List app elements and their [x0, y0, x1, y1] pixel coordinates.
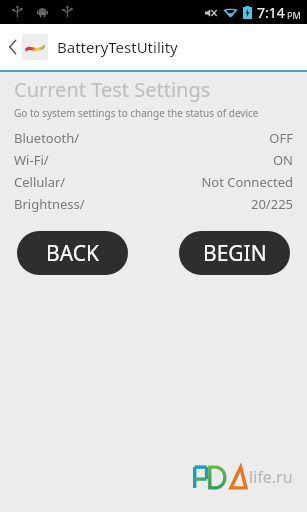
staticText: Current Test Settings — [14, 76, 211, 103]
button[interactable]: Cellular/ — [0, 171, 307, 193]
staticText: BEGIN — [203, 239, 267, 268]
button[interactable]: BACK — [17, 231, 128, 275]
staticText: Bluetooth/ — [14, 129, 80, 147]
staticText: ON — [272, 151, 293, 169]
staticText: Brightness/ — [14, 195, 85, 213]
button[interactable]: Wi-Fi/ — [0, 149, 307, 171]
staticText: 7:14 — [257, 3, 285, 22]
staticText: BatteryTestUtility — [57, 37, 178, 57]
button[interactable]: Bluetooth/ — [0, 127, 307, 149]
staticText: BACK — [46, 239, 99, 268]
button[interactable]: BEGIN — [179, 231, 290, 275]
staticText: OFF — [269, 129, 293, 147]
staticText: PM — [287, 9, 301, 21]
staticText: life.ru — [249, 466, 293, 488]
staticText: Not Connected — [201, 173, 293, 191]
staticText: 20/225 — [250, 195, 293, 213]
staticText: Cellular/ — [14, 173, 66, 191]
button[interactable]: Back — [0, 28, 184, 66]
staticText: Wi-Fi/ — [14, 151, 49, 169]
staticText: Go to system settings to change the stat… — [14, 106, 259, 120]
button[interactable]: Brightness/ — [0, 193, 307, 215]
